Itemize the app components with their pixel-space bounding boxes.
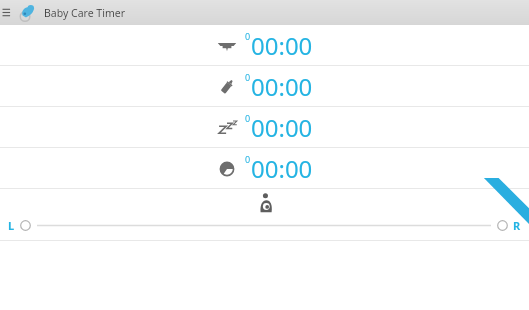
button[interactable]: L — [0, 215, 529, 235]
other: Timer icon — [216, 117, 238, 139]
staticText: Baby Care Timer — [44, 6, 125, 20]
staticText: L — [8, 218, 15, 233]
button[interactable]: Timer icon — [0, 148, 529, 189]
staticText: 00:00 — [251, 70, 313, 103]
staticText: 0 — [245, 30, 251, 42]
button[interactable]: Baby Care Timer — [14, 0, 125, 25]
staticText: 0 — [245, 71, 251, 83]
staticText: 00:00 — [251, 29, 313, 62]
button[interactable]: Breastfeeding — [254, 192, 276, 214]
button[interactable]: Timer icon — [0, 66, 529, 107]
staticText: 00:00 — [251, 111, 313, 144]
other: Timer icon — [216, 35, 238, 57]
button[interactable]: Timer icon — [0, 25, 529, 66]
button[interactable]: Upgrade to PRO — [483, 178, 529, 224]
staticText: 00:00 — [251, 152, 313, 185]
other: Timer icon — [216, 158, 238, 180]
button[interactable]: Timer icon — [0, 107, 529, 148]
staticText: 0 — [245, 153, 251, 165]
staticText: 0 — [245, 112, 251, 124]
button[interactable]: Menu — [0, 0, 14, 25]
staticText: R — [513, 218, 521, 233]
other: Timer icon — [216, 76, 238, 98]
